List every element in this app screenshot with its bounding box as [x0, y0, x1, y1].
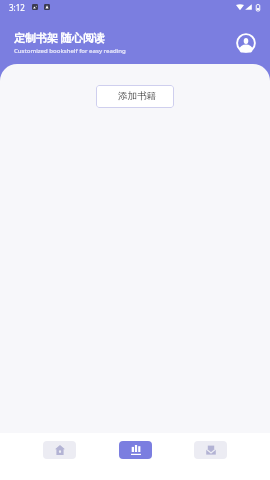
button[interactable]: Messages [194, 441, 227, 459]
button[interactable]: Home [43, 441, 76, 459]
button[interactable]: 添加书籍 [96, 85, 174, 108]
staticText: 3:12 [9, 2, 25, 13]
button[interactable]: Statistics [119, 441, 152, 459]
button[interactable]: Profile [234, 31, 258, 55]
staticText: 定制书架 随心阅读 [14, 30, 105, 45]
staticText: 添加书籍 [118, 90, 156, 102]
staticText: Customized bookshelf for easy reading [14, 47, 126, 55]
